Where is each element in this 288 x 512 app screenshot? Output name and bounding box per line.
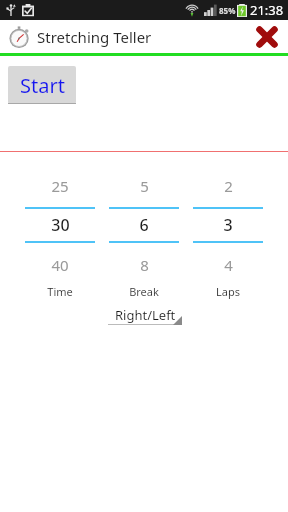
staticText: 2 — [224, 176, 233, 196]
button[interactable]: Start — [8, 66, 76, 104]
staticText: Start — [20, 72, 65, 99]
staticText: 5 — [140, 176, 149, 196]
staticText: Laps — [216, 284, 240, 299]
staticText: 6 — [139, 214, 149, 236]
staticText: 85% — [219, 5, 236, 16]
staticText: Break — [129, 284, 159, 299]
staticText: Right/Left — [115, 306, 176, 324]
button[interactable]: 25 — [18, 172, 102, 278]
staticText: 40 — [51, 255, 69, 275]
staticText: 25 — [51, 176, 69, 196]
staticText: 8 — [140, 255, 149, 275]
staticText: 3 — [223, 214, 233, 236]
staticText: 4 — [224, 255, 233, 275]
staticText: 21:38 — [250, 1, 284, 19]
button[interactable]: 5 — [102, 172, 186, 278]
staticText: Stretching Teller — [37, 27, 152, 47]
button[interactable]: Right/Left — [108, 305, 182, 325]
staticText: 30 — [51, 214, 70, 236]
button[interactable]: 2 — [186, 172, 270, 278]
button[interactable]: Close — [254, 24, 280, 50]
staticText: Time — [47, 284, 73, 299]
